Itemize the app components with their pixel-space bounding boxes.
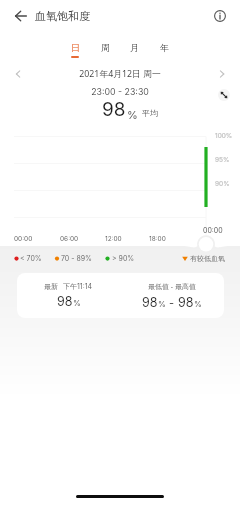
button[interactable]: 年 (151, 40, 177, 60)
staticText: 有较低血氧 (190, 254, 225, 263)
button[interactable]: 最低值 - 最高值 (120, 273, 224, 318)
staticText: % (73, 298, 81, 308)
button[interactable]: Previous day (10, 66, 26, 82)
button[interactable]: 月 (121, 40, 147, 60)
staticText: 下午11:14 (63, 282, 93, 291)
staticText: 月 (130, 42, 139, 53)
staticText: 最低值 - 最高值 (148, 282, 196, 292)
staticText: 周 (101, 42, 110, 53)
staticText: % (194, 299, 202, 309)
staticText: > 90% (112, 254, 135, 262)
staticText: 18:00 (149, 235, 166, 243)
staticText: 90% (215, 180, 230, 188)
staticText: 95% (215, 156, 230, 164)
button[interactable]: 周 (92, 40, 118, 60)
staticText: 00:00 (14, 235, 33, 243)
button[interactable]: Expand chart (218, 89, 230, 101)
staticText: 98 (57, 294, 73, 309)
staticText: 100% (215, 132, 233, 140)
staticText: 平均 (142, 108, 158, 118)
staticText: % (158, 299, 166, 309)
staticText: 23:00 - 23:30 (0, 86, 240, 97)
button[interactable]: 最新 (17, 273, 120, 318)
staticText: 年 (160, 42, 169, 53)
button[interactable]: 日 (62, 40, 88, 60)
staticText: 最新 (44, 282, 58, 291)
button[interactable]: Back (9, 4, 33, 28)
button[interactable]: Next day (214, 66, 230, 82)
staticText: % (127, 108, 138, 121)
staticText: 日 (71, 42, 80, 53)
staticText: 血氧饱和度 (35, 9, 90, 23)
staticText: 98 (142, 295, 158, 310)
staticText: 70 - 89% (61, 254, 92, 262)
staticText: 06:00 (60, 235, 79, 243)
staticText: 98 (102, 98, 126, 121)
staticText: < 70% (20, 254, 42, 262)
staticText: 00:00 (203, 226, 223, 234)
staticText: 2021年4月12日 周一 (0, 68, 240, 80)
staticText: 12:00 (105, 235, 122, 243)
staticText: 98 (178, 295, 194, 310)
staticText: - (166, 296, 178, 309)
button[interactable]: Info (209, 5, 231, 27)
